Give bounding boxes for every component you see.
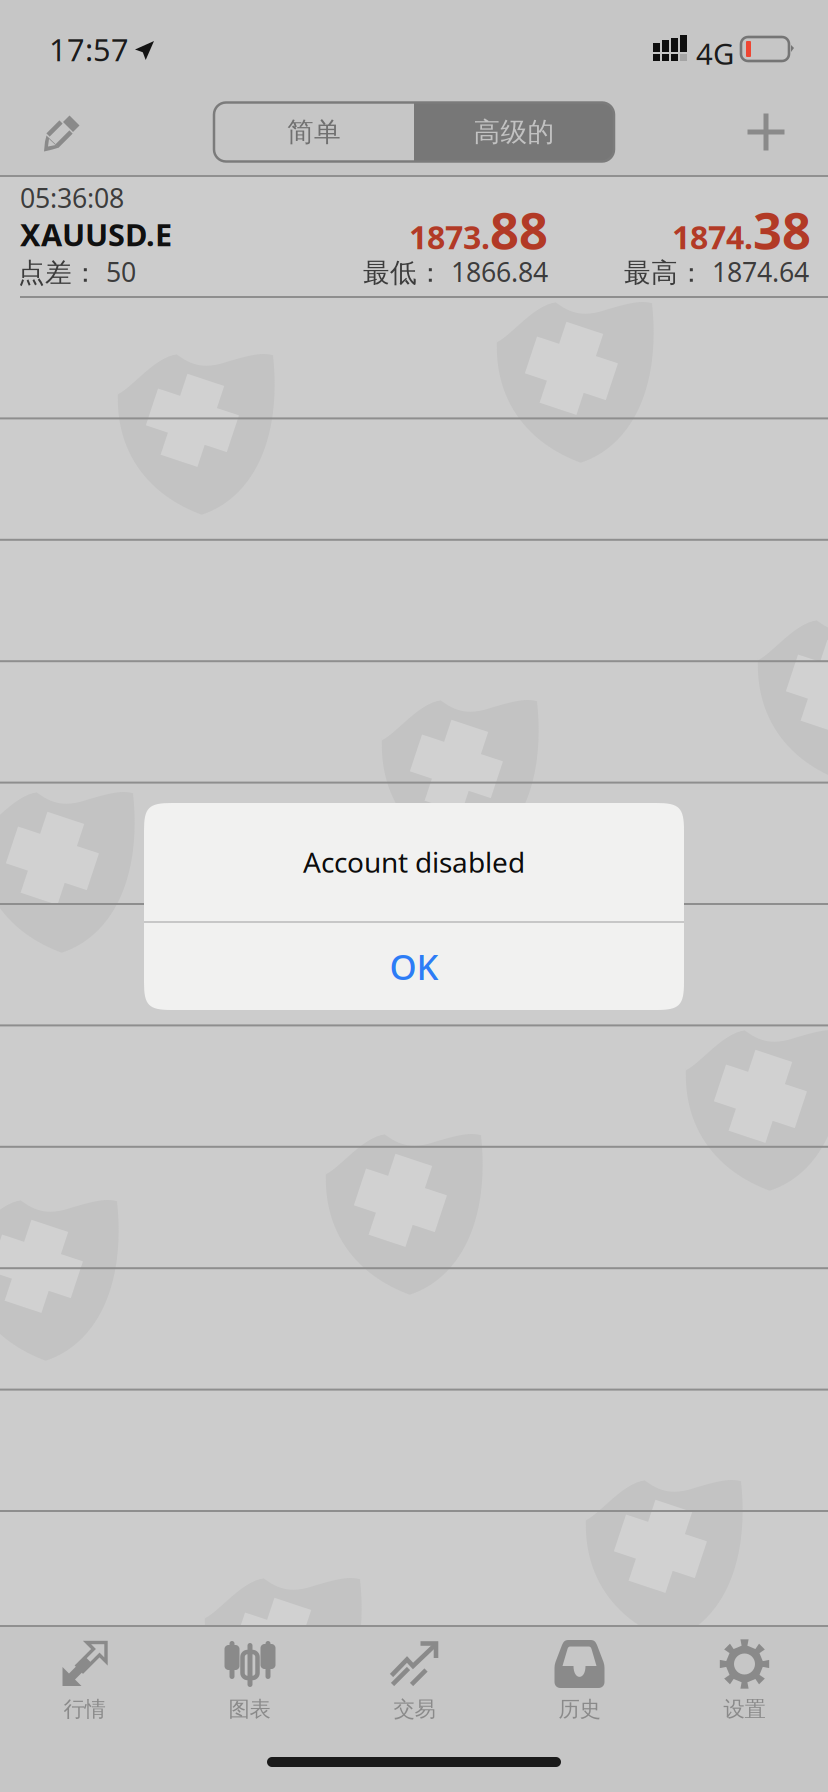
staticText: 88 bbox=[490, 196, 548, 263]
staticText: 最高： 1874.64 bbox=[624, 254, 809, 289]
staticText: 行情 bbox=[63, 1696, 105, 1722]
staticText: 交易 bbox=[393, 1696, 435, 1722]
staticText: 38 bbox=[753, 196, 811, 263]
staticText: 简单 bbox=[287, 116, 341, 148]
staticText: 4G bbox=[696, 34, 734, 73]
button[interactable]: 高级的 bbox=[414, 102, 614, 161]
button[interactable]: 图表 bbox=[167, 1629, 332, 1729]
staticText: 最低： 1866.84 bbox=[363, 254, 548, 289]
button[interactable]: OK bbox=[144, 923, 684, 1010]
staticText: Account disabled bbox=[303, 843, 525, 881]
staticText: 点差： 50 bbox=[18, 254, 136, 289]
button[interactable]: 简单 bbox=[214, 88, 614, 176]
button[interactable]: 行情 bbox=[2, 1629, 167, 1729]
button[interactable]: 设置 bbox=[662, 1629, 827, 1729]
staticText: 高级的 bbox=[473, 116, 554, 148]
staticText: 设置 bbox=[723, 1696, 765, 1722]
button[interactable]: Edit symbols bbox=[21, 88, 105, 176]
button[interactable]: 历史 bbox=[497, 1629, 662, 1729]
staticText: 1873. bbox=[409, 216, 490, 258]
staticText: 05:36:08 bbox=[20, 180, 124, 215]
staticText: 1874. bbox=[672, 216, 753, 258]
button[interactable]: Add symbol bbox=[724, 88, 808, 176]
staticText: 历史 bbox=[558, 1696, 600, 1722]
button[interactable]: 交易 bbox=[332, 1629, 497, 1729]
staticText: 图表 bbox=[228, 1696, 270, 1722]
staticText: OK bbox=[389, 943, 438, 989]
staticText: 17:57 bbox=[49, 29, 129, 70]
staticText: XAUUSD.E bbox=[20, 214, 172, 255]
button[interactable]: 简单 bbox=[214, 102, 414, 161]
